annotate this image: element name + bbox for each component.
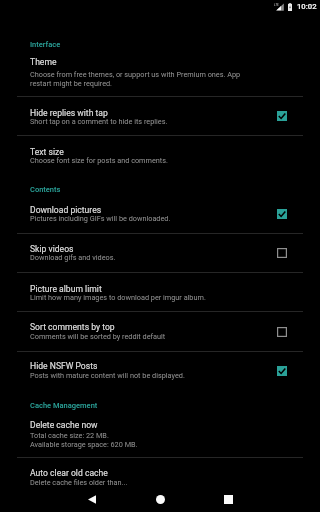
staticText: Cache Management	[30, 401, 98, 410]
button[interactable]	[0, 198, 320, 233]
button[interactable]	[0, 312, 320, 351]
staticText: Choose font size for posts and comments.	[30, 156, 168, 165]
button[interactable]: Recents	[208, 486, 248, 512]
staticText: Choose from free themes, or support us w…	[30, 70, 241, 79]
staticText: Limit how many images to download per im…	[30, 293, 206, 302]
staticText: Skip videos	[30, 244, 74, 254]
staticText: Download pictures	[30, 205, 102, 215]
staticText: restart might be required.	[30, 79, 113, 88]
staticText: Hide NSFW Posts	[30, 361, 98, 371]
button[interactable]	[0, 458, 320, 492]
button[interactable]: Back	[72, 486, 112, 512]
staticText: Text size	[30, 147, 64, 157]
staticText: Hide replies with tap	[30, 108, 108, 118]
staticText: Available storage space: 620 MB.	[30, 440, 138, 449]
staticText: Auto clear old cache	[30, 468, 108, 478]
staticText: Delete cache now	[30, 420, 98, 430]
staticText: Posts with mature content will not be di…	[30, 371, 185, 380]
button[interactable]	[0, 273, 320, 311]
staticText: Picture album limit	[30, 284, 102, 294]
staticText: Download gifs and videos.	[30, 253, 116, 262]
button[interactable]	[0, 136, 320, 180]
button[interactable]: Home	[140, 486, 180, 512]
staticText: Contents	[30, 185, 61, 194]
staticText: Theme	[30, 57, 57, 67]
staticText: Short tap on a comment to hide its repli…	[30, 117, 168, 126]
staticText: Sort comments by top	[30, 322, 115, 332]
button[interactable]	[0, 97, 320, 135]
button[interactable]	[0, 52, 320, 96]
staticText: Comments will be sorted by reddit defaul…	[30, 332, 166, 341]
staticText: Interface	[30, 40, 61, 49]
button[interactable]	[0, 234, 320, 272]
staticText: Delete cache files older than...	[30, 478, 128, 487]
button[interactable]	[0, 412, 320, 457]
button[interactable]	[0, 352, 320, 392]
staticText: Total cache size: 22 MB.	[30, 431, 109, 440]
staticText: Pictures including GIFs will be download…	[30, 214, 171, 223]
staticText: 10:02	[297, 2, 317, 11]
